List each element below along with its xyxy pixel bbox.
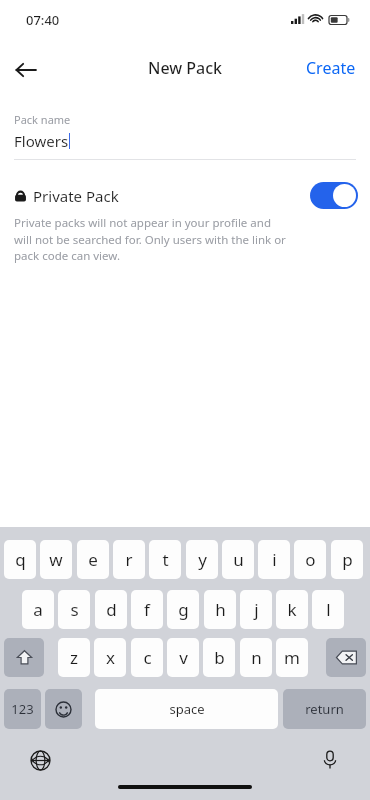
staticText: y	[198, 548, 207, 571]
button[interactable]: k	[276, 590, 308, 629]
staticText: s	[70, 598, 79, 621]
button[interactable]: z	[58, 638, 90, 677]
button[interactable]: Private Pack toggle	[310, 182, 358, 209]
button[interactable]: Shift	[4, 638, 44, 677]
staticText: g	[178, 598, 189, 621]
button[interactable]: o	[294, 540, 326, 579]
button[interactable]: space	[95, 689, 278, 729]
button[interactable]: u	[222, 540, 254, 579]
button[interactable]: j	[240, 590, 272, 629]
staticText: z	[70, 646, 78, 669]
staticText: New Pack	[148, 57, 223, 79]
staticText: Pack name	[14, 112, 71, 127]
staticText: Private Pack	[33, 186, 119, 206]
staticText: Private packs will not appear in your pr…	[14, 215, 290, 263]
staticText: u	[233, 548, 244, 571]
staticText: v	[179, 646, 188, 669]
staticText: h	[215, 598, 226, 621]
staticText: w	[49, 548, 63, 571]
staticText: e	[88, 548, 98, 571]
staticText: d	[106, 598, 117, 621]
staticText: n	[251, 646, 262, 669]
button[interactable]: a	[22, 590, 54, 629]
staticText: 07:40	[26, 11, 60, 29]
button[interactable]: p	[331, 540, 363, 579]
staticText: c	[143, 646, 152, 669]
staticText: p	[342, 548, 353, 571]
button[interactable]: f	[131, 590, 163, 629]
button[interactable]: h	[204, 590, 236, 629]
staticText: b	[214, 646, 225, 669]
button[interactable]: q	[4, 540, 36, 579]
staticText: return	[305, 700, 344, 718]
staticText: j	[254, 598, 259, 621]
button[interactable]: d	[95, 590, 127, 629]
staticText: m	[284, 646, 300, 669]
button[interactable]: x	[94, 638, 126, 677]
button[interactable]: Back	[6, 50, 46, 90]
button[interactable]: t	[149, 540, 181, 579]
button[interactable]: Emoji	[45, 689, 82, 729]
staticText: k	[287, 598, 297, 621]
button[interactable]: n	[240, 638, 272, 677]
button[interactable]: v	[167, 638, 199, 677]
button[interactable]: Create	[300, 51, 362, 85]
button[interactable]: w	[40, 540, 72, 579]
staticText: x	[106, 646, 115, 669]
staticText: space	[169, 700, 205, 718]
staticText: l	[326, 598, 331, 621]
staticText: t	[162, 548, 169, 571]
button[interactable]: 123	[4, 689, 41, 729]
staticText: f	[144, 598, 150, 621]
button[interactable]: return	[283, 689, 366, 729]
button[interactable]: c	[131, 638, 163, 677]
button[interactable]: Switch keyboard	[25, 745, 55, 775]
button[interactable]: Backspace	[326, 638, 366, 677]
staticText: o	[305, 548, 316, 571]
staticText: Flowers	[14, 131, 69, 151]
button[interactable]: g	[167, 590, 199, 629]
staticText: Create	[306, 57, 356, 79]
button[interactable]: y	[186, 540, 218, 579]
button[interactable]: Voice input	[315, 745, 345, 775]
staticText: r	[125, 548, 133, 571]
staticText: a	[33, 598, 43, 621]
staticText: q	[15, 548, 26, 571]
button[interactable]: s	[58, 590, 90, 629]
button[interactable]: r	[113, 540, 145, 579]
button[interactable]: b	[203, 638, 235, 677]
button[interactable]: i	[258, 540, 290, 579]
button[interactable]: m	[276, 638, 308, 677]
staticText: 123	[11, 700, 34, 718]
button[interactable]: l	[312, 590, 344, 629]
staticText: i	[272, 548, 277, 571]
button[interactable]: e	[77, 540, 109, 579]
